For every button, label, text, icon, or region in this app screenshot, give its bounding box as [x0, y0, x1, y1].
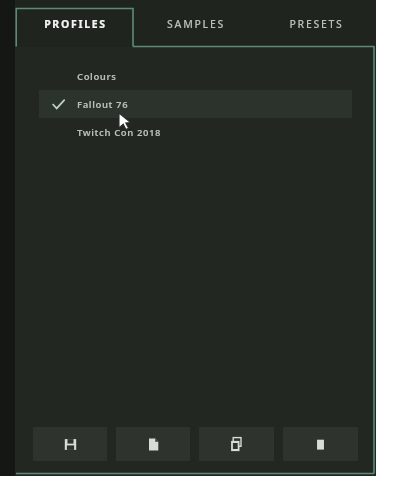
staticText: SAMPLES — [167, 17, 225, 31]
button[interactable]: PRESETS — [256, 0, 376, 47]
button[interactable]: PROFILES — [15, 0, 136, 47]
staticText: Twitch Con 2018 — [77, 126, 162, 139]
button[interactable]: Save — [33, 427, 107, 461]
button[interactable]: Colours — [39, 62, 352, 90]
staticText: Fallout 76 — [77, 98, 129, 111]
button[interactable]: Delete — [283, 427, 358, 461]
button[interactable]: Fallout 76 — [39, 90, 352, 118]
button[interactable]: Duplicate — [199, 427, 274, 461]
button[interactable]: Twitch Con 2018 — [39, 118, 352, 146]
button[interactable]: SAMPLES — [136, 0, 256, 47]
staticText: PRESETS — [289, 17, 344, 31]
button[interactable]: New file — [116, 427, 190, 461]
staticText: PROFILES — [44, 17, 107, 31]
staticText: Colours — [77, 70, 117, 83]
